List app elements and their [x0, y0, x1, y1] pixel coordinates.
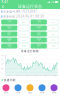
- staticText: 维护保养: [40, 92, 44, 94]
- staticText: 25: [1, 67, 3, 69]
- staticText: 转速反馈: [7, 44, 11, 46]
- staticText: 设备档案: [52, 92, 56, 94]
- staticText: 瞬时流量: [7, 38, 11, 40]
- staticText: 20: [53, 75, 55, 77]
- button[interactable]: 报警记录: [0, 84, 12, 94]
- button[interactable]: 3.215: [18, 25, 29, 30]
- staticText: 报警记录: [4, 92, 8, 94]
- staticText: 220.4: [22, 21, 26, 23]
- staticText: m³/h: [8, 40, 10, 42]
- staticText: 75: [1, 59, 3, 60]
- button[interactable]: 累计流量: [31, 37, 47, 42]
- staticText: 0: [1, 72, 2, 74]
- staticText: V: [9, 22, 10, 24]
- staticText: MPa: [8, 34, 11, 36]
- staticText: 更新时间:2024-06-01 08:30: [3, 15, 44, 18]
- staticText: 12.85: [51, 21, 55, 23]
- staticText: 1480: [22, 45, 26, 47]
- staticText: A: [38, 22, 39, 24]
- staticText: m³: [38, 40, 39, 42]
- button[interactable]: 输出功率: [1, 25, 17, 30]
- button[interactable]: 运行时长: [31, 43, 47, 48]
- button[interactable]: 0.365: [48, 31, 59, 36]
- staticText: kW: [8, 28, 10, 30]
- staticText: 1285: [51, 45, 55, 47]
- button[interactable]: 220.4: [18, 19, 29, 24]
- button[interactable]: 工作电压: [1, 19, 17, 24]
- staticText: 9:41: [2, 0, 9, 4]
- staticText: 输出功率: [7, 26, 11, 28]
- button[interactable]: 维护保养: [36, 84, 48, 94]
- staticText: 运行时长: [37, 44, 41, 46]
- staticText: 50: [1, 63, 3, 65]
- staticText: rpm: [8, 46, 11, 48]
- staticText: 0: [8, 75, 9, 77]
- staticText: 设备运行曲线: [21, 49, 39, 53]
- button[interactable]: 能耗统计: [24, 84, 36, 94]
- button[interactable]: 运行温度: [31, 25, 47, 30]
- staticText: 快捷功能: [4, 78, 16, 82]
- button[interactable]: 12.85: [48, 19, 59, 24]
- staticText: 运行温度: [37, 26, 41, 28]
- button[interactable]: 工作电流: [31, 19, 47, 24]
- staticText: ℃: [38, 28, 39, 30]
- button[interactable]: 进水压力: [1, 31, 17, 36]
- button[interactable]: 瞬时流量: [1, 37, 17, 42]
- staticText: 28.71: [22, 39, 26, 41]
- staticText: 3.215: [22, 27, 26, 29]
- button[interactable]: 运行参数: [12, 84, 24, 94]
- staticText: 进水压力: [7, 32, 11, 34]
- button[interactable]: 转速反馈: [1, 43, 17, 48]
- staticText: h: [38, 46, 39, 48]
- staticText: 16: [44, 75, 46, 77]
- button[interactable]: 设备档案: [48, 84, 60, 94]
- staticText: 100: [1, 54, 4, 56]
- button[interactable]: Back: [1, 4, 5, 9]
- staticText: 工作电压: [7, 20, 11, 22]
- button[interactable]: 1285: [48, 43, 59, 48]
- staticText: 9512: [51, 39, 55, 41]
- staticText: 46.20: [51, 27, 55, 29]
- staticText: 能耗统计: [28, 92, 32, 94]
- button[interactable]: 1480: [18, 43, 29, 48]
- staticText: 设备编号:AB-10293847: [3, 10, 37, 13]
- staticText: 0.480: [22, 33, 26, 35]
- staticText: 累计流量: [37, 38, 41, 40]
- button[interactable]: 9512: [48, 37, 59, 42]
- staticText: 设备运行状态: [18, 4, 42, 9]
- button[interactable]: 28.71: [18, 37, 29, 42]
- staticText: 8: [27, 75, 28, 77]
- staticText: 运行参数: [16, 92, 20, 94]
- staticText: 工作电流: [37, 20, 41, 22]
- staticText: MPa: [37, 34, 40, 36]
- button[interactable]: 0.480: [18, 31, 29, 36]
- staticText: 12: [35, 75, 37, 77]
- staticText: 出水压力: [37, 32, 41, 34]
- staticText: 4: [18, 75, 19, 77]
- button[interactable]: 46.20: [48, 25, 59, 30]
- staticText: 0.365: [51, 33, 55, 35]
- button[interactable]: 出水压力: [31, 31, 47, 36]
